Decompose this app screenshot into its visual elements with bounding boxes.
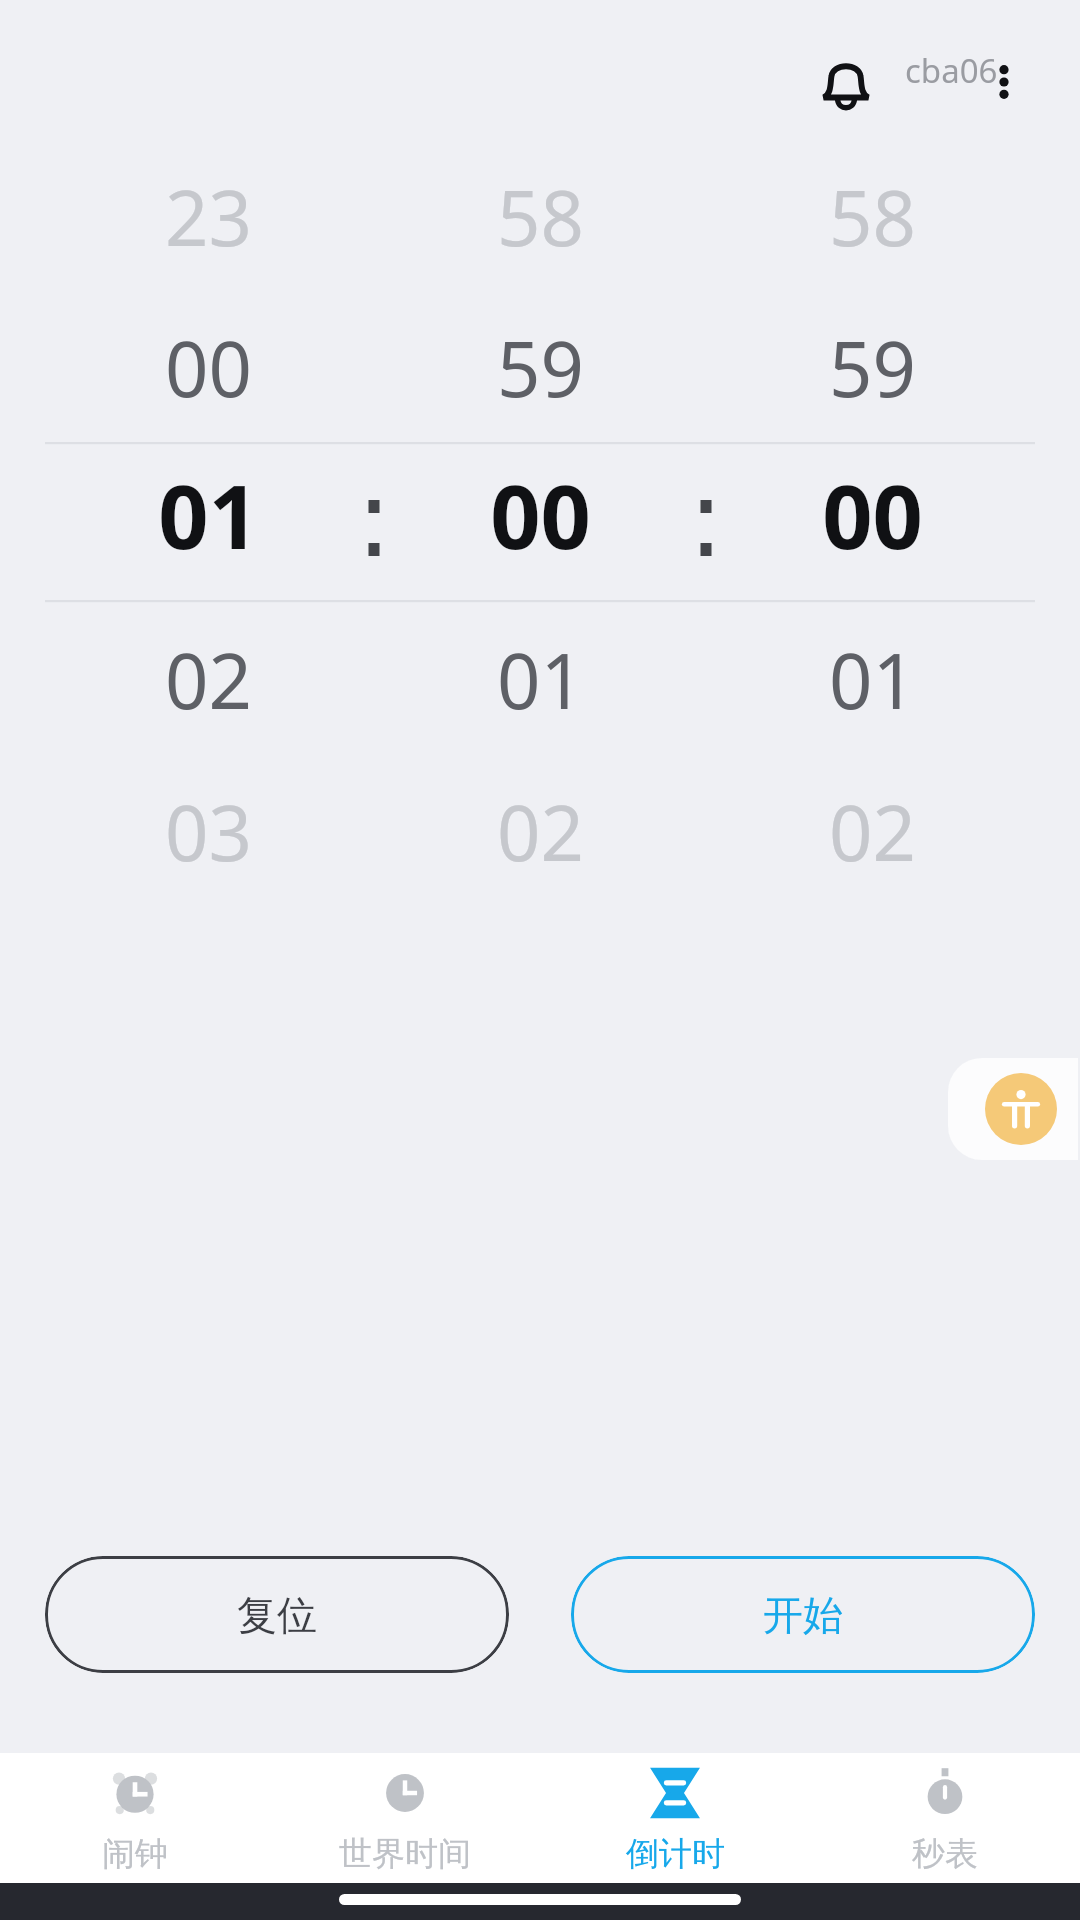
button[interactable]: Accessibility menu (948, 1058, 1078, 1160)
staticText: 59 (497, 316, 584, 420)
button[interactable]: Alarm notification (805, 42, 887, 124)
staticText: 02 (165, 628, 252, 732)
button[interactable]: 秒表 (810, 1753, 1080, 1883)
staticText: 00 (490, 455, 591, 575)
staticText: 01 (497, 628, 584, 732)
button[interactable]: 58 (430, 157, 650, 277)
button[interactable]: 01 (430, 620, 650, 740)
button[interactable]: 闹钟 (0, 1753, 270, 1883)
staticText: 58 (497, 165, 584, 269)
button[interactable]: 00 (98, 308, 318, 428)
staticText: 02 (497, 780, 584, 884)
button[interactable]: 世界时间 (270, 1753, 540, 1883)
staticText: 59 (829, 316, 916, 420)
button[interactable]: More options (962, 40, 1046, 124)
staticText: 00 (822, 455, 923, 575)
button[interactable]: 58 (762, 157, 982, 277)
button[interactable]: 倒计时 (540, 1753, 810, 1883)
button[interactable]: 01 (98, 455, 318, 575)
button[interactable]: 复位 (45, 1556, 509, 1673)
staticText: 58 (829, 165, 916, 269)
staticText: 01 (829, 628, 916, 732)
button[interactable]: 23 (98, 157, 318, 277)
button[interactable]: 00 (430, 455, 650, 575)
staticText: cba06 (905, 48, 998, 93)
staticText: 23 (165, 165, 252, 269)
staticText: 倒计时 (626, 1833, 725, 1875)
button[interactable]: 02 (98, 620, 318, 740)
button[interactable]: 59 (430, 308, 650, 428)
staticText: 03 (165, 780, 252, 884)
staticText: 闹钟 (102, 1833, 168, 1875)
staticText: 01 (158, 455, 259, 575)
staticText: 00 (165, 316, 252, 420)
staticText: 世界时间 (339, 1833, 471, 1875)
button[interactable]: 02 (762, 772, 982, 892)
staticText: 开始 (763, 1590, 843, 1640)
staticText: 复位 (237, 1590, 317, 1640)
button[interactable]: 开始 (571, 1556, 1035, 1673)
button[interactable]: 00 (762, 455, 982, 575)
staticText: 秒表 (912, 1833, 978, 1875)
button[interactable]: 03 (98, 772, 318, 892)
button[interactable]: 01 (762, 620, 982, 740)
button[interactable]: 59 (762, 308, 982, 428)
staticText: 02 (829, 780, 916, 884)
button[interactable]: 02 (430, 772, 650, 892)
